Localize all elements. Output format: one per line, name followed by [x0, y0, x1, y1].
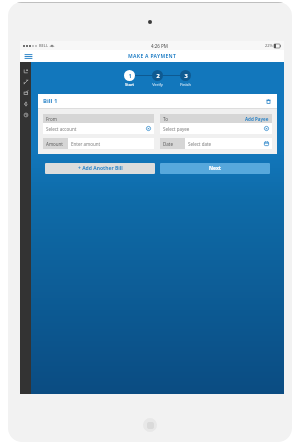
staticText: 3	[184, 72, 188, 79]
button[interactable]: Transfer	[20, 76, 31, 87]
button[interactable]: Date	[160, 138, 272, 149]
staticText: 4:26 PM	[151, 43, 168, 49]
button[interactable]: Pay bills	[20, 87, 31, 98]
staticText: 22%	[265, 43, 273, 48]
staticText: BELL	[39, 43, 49, 48]
button[interactable]: + Add Another Bill	[45, 163, 155, 174]
staticText: Start	[125, 82, 134, 87]
staticText: + Add Another Bill	[78, 165, 123, 172]
staticText: Date	[163, 141, 173, 147]
button[interactable]: Next	[160, 163, 270, 174]
button[interactable]: Select payee	[163, 123, 269, 134]
button[interactable]: History	[20, 109, 31, 120]
staticText: Enter amount	[71, 141, 101, 147]
staticText: Amount	[46, 141, 63, 147]
button[interactable]: 3	[180, 70, 191, 87]
staticText: From	[46, 116, 58, 122]
button[interactable]: Add Payee	[245, 116, 269, 122]
button[interactable]: Menu	[23, 51, 33, 61]
other: Home	[143, 418, 157, 432]
button[interactable]: Select account	[46, 123, 151, 134]
staticText: 1	[128, 72, 132, 79]
staticText: To	[163, 116, 168, 122]
button[interactable]: Accounts	[20, 65, 31, 76]
staticText: Next	[209, 165, 222, 172]
button[interactable]: Bill 1	[43, 94, 272, 108]
button[interactable]: Delete bill	[264, 97, 272, 105]
staticText: Select payee	[163, 126, 190, 132]
staticText: Select date	[188, 141, 212, 147]
staticText: 2	[156, 72, 160, 79]
button[interactable]: Deposit	[20, 98, 31, 109]
staticText: Add Payee	[245, 116, 269, 122]
staticText: MAKE A PAYMENT	[128, 53, 177, 60]
staticText: Verify	[152, 82, 163, 87]
button[interactable]: 1	[124, 70, 135, 87]
staticText: Finish	[180, 82, 191, 87]
button[interactable]: 2	[152, 70, 163, 87]
button[interactable]: Amount	[43, 138, 154, 149]
staticText: Select account	[46, 126, 77, 132]
staticText: Bill 1	[43, 97, 58, 105]
